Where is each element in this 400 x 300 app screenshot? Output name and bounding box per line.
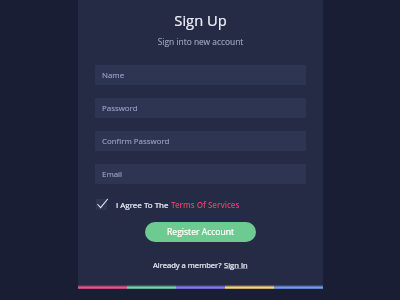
- staticText: Already a member?: [153, 260, 224, 270]
- staticText: Confirm Password: [102, 136, 170, 147]
- button[interactable]: Confirm Password: [95, 131, 306, 151]
- button[interactable]: Agree to terms checkbox: [96, 196, 240, 212]
- button[interactable]: Email: [95, 164, 306, 184]
- staticText: Email: [102, 169, 123, 180]
- staticText: Sign Up: [78, 10, 323, 30]
- staticText: Name: [102, 70, 125, 81]
- button[interactable]: Sign In: [224, 260, 248, 270]
- staticText: Password: [102, 103, 138, 114]
- staticText: Sign into new account: [78, 36, 323, 47]
- button[interactable]: Password: [95, 98, 306, 118]
- staticText: Register Account: [167, 226, 235, 238]
- button[interactable]: Name: [95, 65, 306, 85]
- staticText: I Agree To The: [116, 199, 171, 210]
- staticText: Terms Of Services: [171, 199, 240, 210]
- other: Agree to terms checkbox: [96, 199, 107, 210]
- button[interactable]: Register Account: [145, 222, 256, 242]
